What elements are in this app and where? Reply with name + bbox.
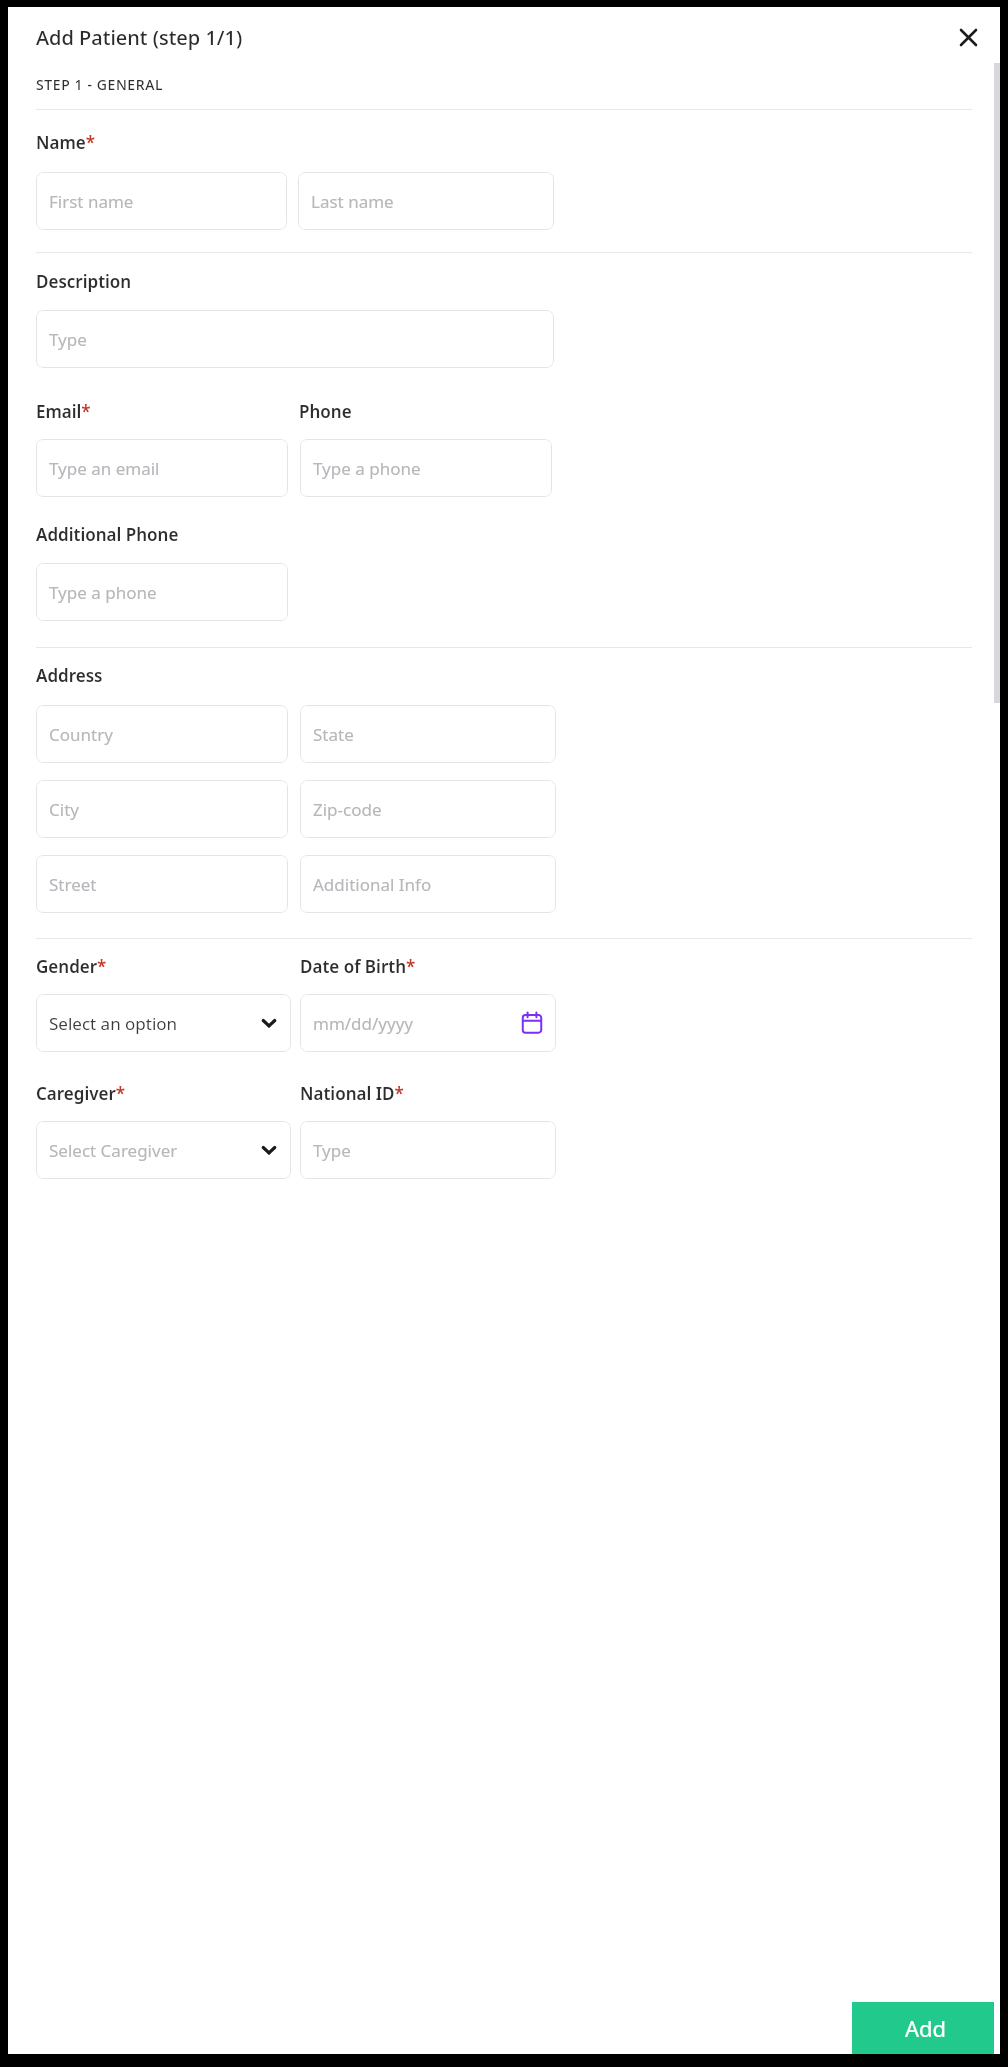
staticText: Email*: [36, 400, 91, 423]
staticText: Caregiver*: [36, 1082, 126, 1105]
staticText: Type: [49, 328, 87, 351]
staticText: Gender*: [36, 955, 107, 978]
staticText: Additional Phone: [36, 523, 179, 546]
staticText: Type: [313, 1139, 351, 1162]
button[interactable]: Last name: [298, 172, 554, 230]
staticText: National ID*: [300, 1082, 404, 1105]
staticText: State: [313, 723, 354, 746]
staticText: Last name: [311, 190, 394, 213]
button[interactable]: Select an option: [36, 994, 291, 1052]
button[interactable]: State: [300, 705, 556, 763]
staticText: Select an option: [49, 1012, 178, 1035]
button[interactable]: Country: [36, 705, 288, 763]
button[interactable]: Zip-code: [300, 780, 556, 838]
button[interactable]: Type: [36, 310, 554, 368]
button[interactable]: Street: [36, 855, 288, 913]
button[interactable]: Type an email: [36, 439, 288, 497]
button[interactable]: Close: [951, 20, 985, 54]
button[interactable]: Add Patient (step 1/1): [36, 24, 243, 51]
staticText: Add Patient (step 1/1): [36, 24, 243, 51]
staticText: Add: [905, 2013, 947, 2043]
button[interactable]: mm/dd/yyyy: [300, 994, 556, 1052]
staticText: Date of Birth*: [300, 955, 416, 978]
staticText: STEP 1 - GENERAL: [36, 75, 164, 94]
button[interactable]: Select Caregiver: [36, 1121, 291, 1179]
staticText: Type a phone: [313, 457, 421, 480]
staticText: City: [49, 798, 79, 821]
staticText: Country: [49, 723, 113, 746]
button[interactable]: First name: [36, 172, 287, 230]
staticText: First name: [49, 190, 134, 213]
staticText: Phone: [299, 400, 352, 423]
staticText: Description: [36, 270, 132, 293]
button[interactable]: Additional Info: [300, 855, 556, 913]
staticText: Zip-code: [313, 798, 382, 821]
button[interactable]: Type: [300, 1121, 556, 1179]
staticText: Type an email: [49, 457, 160, 480]
button[interactable]: Type a phone: [36, 563, 288, 621]
staticText: Type a phone: [49, 581, 157, 604]
button[interactable]: Type a phone: [300, 439, 552, 497]
staticText: Name*: [36, 131, 95, 154]
staticText: Select Caregiver: [49, 1139, 178, 1162]
staticText: Additional Info: [313, 873, 432, 896]
staticText: Street: [49, 873, 97, 896]
staticText: mm/dd/yyyy: [313, 1012, 414, 1035]
button[interactable]: Add: [852, 2002, 1000, 2054]
button[interactable]: City: [36, 780, 288, 838]
staticText: Address: [36, 664, 103, 687]
